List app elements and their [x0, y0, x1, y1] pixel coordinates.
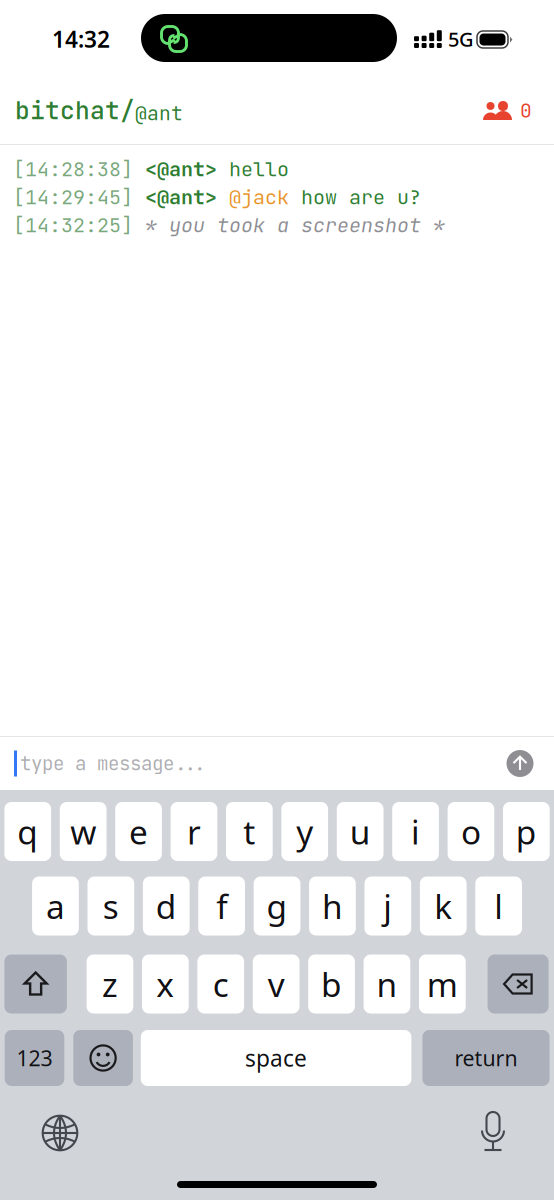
button[interactable]: y	[281, 802, 328, 861]
staticText: i	[411, 809, 420, 854]
staticText: e	[129, 809, 148, 854]
button[interactable]: b	[308, 954, 355, 1013]
button[interactable]: a	[32, 876, 79, 935]
staticText: d	[156, 884, 177, 928]
button[interactable]: u	[337, 802, 383, 861]
staticText: 123	[16, 1044, 52, 1072]
button[interactable]: r	[171, 802, 217, 861]
button[interactable]: c	[197, 954, 244, 1013]
button[interactable]: bitchat/	[0, 86, 183, 135]
button[interactable]: n	[364, 954, 410, 1013]
button[interactable]: Delete	[488, 954, 549, 1013]
staticText: return	[454, 1044, 517, 1072]
staticText: 5G	[448, 26, 474, 52]
button[interactable]: d	[143, 876, 190, 935]
staticText: * you took a screenshot *	[145, 212, 445, 238]
button[interactable]: People	[486, 90, 554, 131]
staticText: z	[102, 962, 118, 1006]
staticText: <@ant>	[145, 184, 217, 210]
button[interactable]: g	[254, 876, 300, 935]
staticText: q	[17, 809, 38, 854]
button[interactable]: Shift	[4, 954, 67, 1013]
staticText: g	[267, 884, 288, 928]
staticText: j	[383, 884, 392, 928]
staticText: x	[156, 962, 174, 1006]
staticText: space	[245, 1043, 307, 1073]
button[interactable]: t	[226, 802, 273, 861]
staticText: v	[268, 962, 285, 1006]
button[interactable]: w	[60, 802, 106, 861]
button[interactable]: p	[503, 802, 550, 861]
button[interactable]: 123	[5, 1030, 64, 1086]
staticText: r	[187, 809, 201, 854]
staticText: t	[243, 809, 255, 854]
staticText: 0	[520, 98, 532, 123]
button[interactable]: l	[475, 876, 522, 935]
button[interactable]: q	[4, 802, 51, 861]
staticText: l	[494, 884, 503, 928]
staticText: b	[321, 962, 342, 1006]
staticText: how are u?	[289, 184, 421, 210]
staticText: <@ant>	[145, 156, 217, 182]
button[interactable]: k	[420, 876, 467, 935]
button[interactable]: return	[422, 1030, 550, 1086]
staticText: c	[213, 962, 229, 1006]
staticText: hello	[217, 156, 289, 182]
staticText: [14:29:45]	[13, 184, 145, 210]
staticText: k	[434, 884, 452, 928]
button[interactable]: Dictation	[473, 1111, 513, 1153]
staticText: s	[103, 884, 119, 928]
button[interactable]: Emoji	[73, 1030, 133, 1086]
button[interactable]: o	[448, 802, 494, 861]
button[interactable]: Send	[500, 743, 540, 783]
button[interactable]: m	[419, 954, 466, 1013]
staticText: h	[322, 884, 343, 928]
button[interactable]: i	[392, 802, 439, 861]
staticText: y	[296, 809, 313, 854]
staticText: p	[516, 809, 537, 854]
button[interactable]: v	[253, 954, 299, 1013]
staticText: u	[350, 809, 371, 854]
staticText: bitchat/	[15, 94, 135, 127]
staticText: m	[427, 962, 458, 1006]
button[interactable]: j	[364, 876, 411, 935]
button[interactable]: space	[141, 1030, 411, 1086]
staticText: w	[70, 809, 96, 854]
staticText: f	[216, 884, 227, 928]
staticText: @ant	[135, 100, 183, 126]
staticText: [14:32:25]	[13, 212, 145, 238]
staticText: a	[46, 884, 65, 928]
button[interactable]: x	[142, 954, 189, 1013]
staticText: @jack	[229, 184, 289, 210]
staticText: type a message...	[20, 751, 207, 776]
button[interactable]: h	[309, 876, 356, 935]
staticText: o	[461, 809, 481, 854]
staticText: n	[376, 962, 397, 1006]
staticText: [14:28:38]	[13, 156, 145, 182]
button[interactable]: f	[198, 876, 245, 935]
staticText: 14:32	[52, 24, 110, 54]
button[interactable]: Switch keyboard	[40, 1113, 80, 1153]
button[interactable]: e	[115, 802, 162, 861]
button[interactable]: s	[87, 876, 134, 935]
button[interactable]: z	[87, 954, 133, 1013]
